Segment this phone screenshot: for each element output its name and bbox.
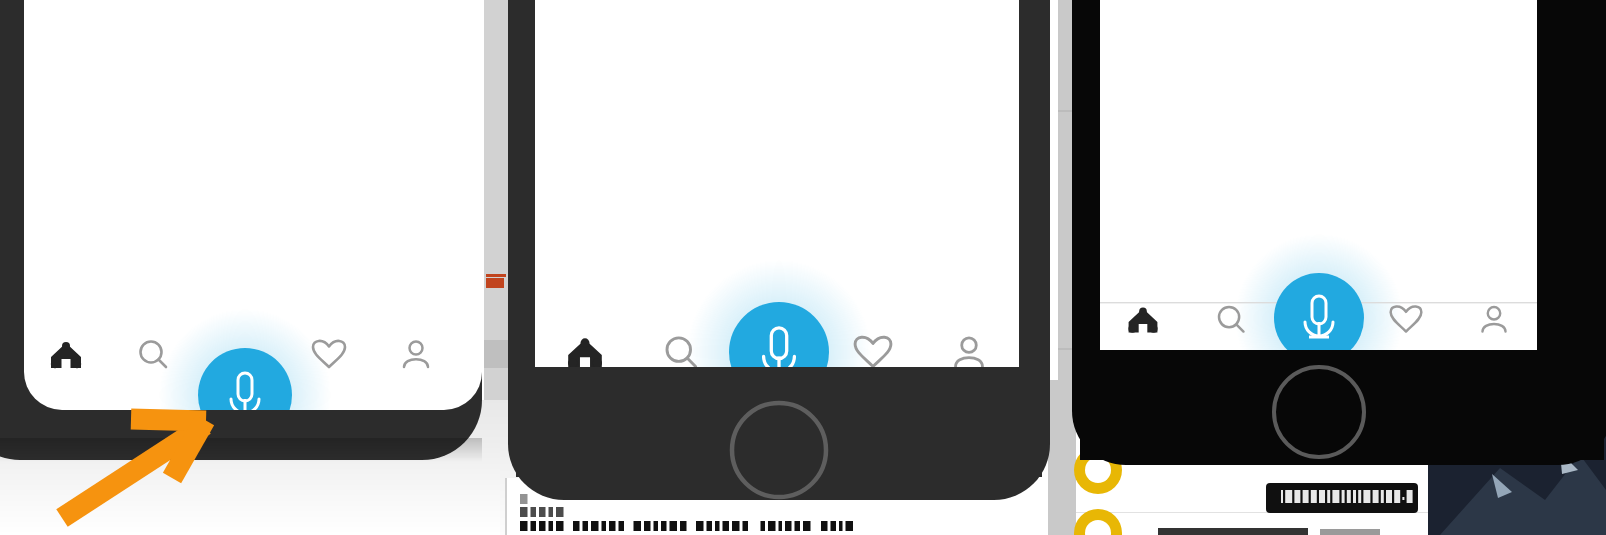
button[interactable]: Home bbox=[537, 326, 633, 388]
button[interactable]: Search bbox=[112, 330, 198, 390]
button[interactable]: Favorites bbox=[292, 330, 378, 390]
button[interactable]: Profile bbox=[378, 330, 464, 390]
button[interactable]: Voice search bbox=[1274, 273, 1364, 363]
button[interactable]: Profile bbox=[1451, 296, 1537, 350]
button[interactable]: Profile bbox=[925, 326, 1019, 388]
button[interactable]: Favorites bbox=[1364, 296, 1451, 350]
button[interactable]: Voice search bbox=[198, 348, 292, 442]
button[interactable]: Search bbox=[633, 326, 729, 388]
button[interactable]: Voice search bbox=[729, 302, 829, 402]
button[interactable]: Home bbox=[1100, 296, 1187, 350]
button[interactable]: Search bbox=[1187, 296, 1274, 350]
button[interactable]: Favorites bbox=[829, 326, 925, 388]
button[interactable]: Home bbox=[24, 330, 112, 390]
